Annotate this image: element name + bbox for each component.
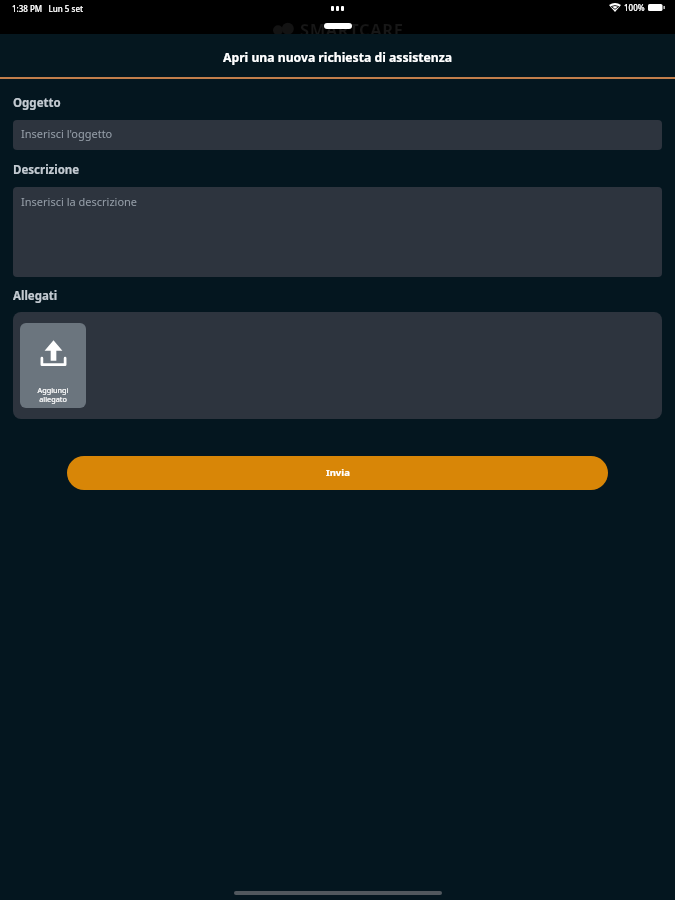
button[interactable]: Inserisci la descrizione bbox=[13, 187, 662, 277]
staticText: Inserisci la descrizione bbox=[21, 194, 138, 209]
staticText: 1:38 PM Lun 5 set bbox=[12, 3, 84, 14]
staticText: SMARTCARE bbox=[300, 18, 404, 40]
staticText: Descrizione bbox=[13, 162, 80, 178]
staticText: Oggetto bbox=[13, 95, 61, 111]
staticText: 100% bbox=[624, 2, 645, 13]
staticText: Inserisci l'oggetto bbox=[21, 126, 113, 141]
staticText: Aggiungi allegato bbox=[31, 385, 75, 405]
staticText: Invia bbox=[326, 466, 350, 479]
staticText: Apri una nuova richiesta di assistenza bbox=[223, 49, 453, 66]
button[interactable]: Invia bbox=[67, 456, 608, 490]
button[interactable]: Aggiungi allegato bbox=[20, 323, 86, 408]
staticText: Allegati bbox=[13, 288, 58, 304]
button[interactable]: Inserisci l'oggetto bbox=[13, 120, 662, 150]
